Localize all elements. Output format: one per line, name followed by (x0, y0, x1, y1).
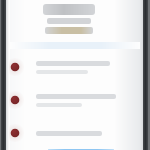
other: List bullet (9, 94, 21, 106)
button[interactable]: List bullet (10, 55, 140, 79)
button[interactable]: List bullet (10, 121, 140, 145)
button[interactable]: List bullet (10, 88, 140, 112)
other: List bullet (9, 61, 21, 73)
other: List bullet (9, 127, 21, 139)
button[interactable]: Primary action (48, 149, 114, 150)
